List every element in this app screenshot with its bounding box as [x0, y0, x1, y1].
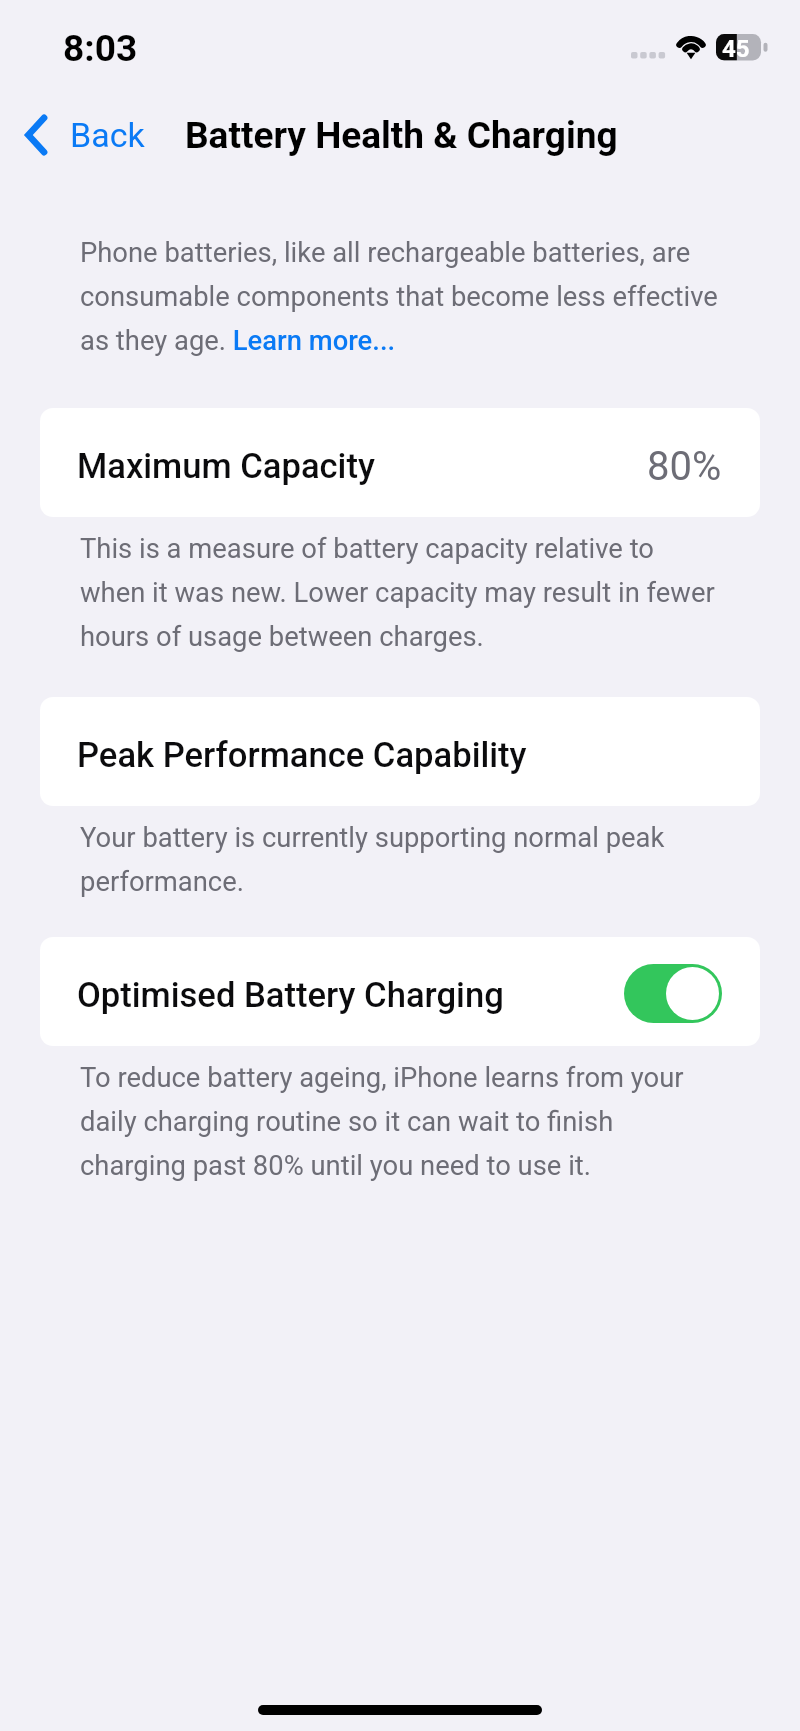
staticText: Optimised Battery Charging	[77, 975, 504, 1016]
staticText: Phone batteries, like all rechargeable b…	[80, 227, 718, 359]
staticText: 8:03	[63, 27, 138, 70]
staticText: This is a measure of battery capacity re…	[80, 523, 718, 655]
other: Cellular signal	[631, 52, 667, 59]
button[interactable]: Optimised Battery Charging	[40, 937, 760, 1046]
staticText: 45	[722, 35, 750, 62]
staticText: Battery Health & Charging	[185, 114, 618, 157]
staticText: 80%	[647, 443, 722, 490]
button[interactable]: Back	[0, 115, 155, 155]
button[interactable]: Optimised Battery Charging, on	[624, 964, 722, 1023]
staticText: Your battery is currently supporting nor…	[80, 812, 718, 900]
other: Wi-Fi	[673, 32, 709, 62]
staticText: To reduce battery ageing, iPhone learns …	[80, 1052, 718, 1184]
button[interactable]: Maximum Capacity	[40, 408, 760, 517]
staticText: Back	[70, 115, 145, 155]
staticText: Maximum Capacity	[77, 446, 375, 487]
other: Battery 45 percent	[716, 34, 768, 61]
button[interactable]: Peak Performance Capability	[40, 697, 760, 806]
staticText: Peak Performance Capability	[77, 735, 527, 776]
